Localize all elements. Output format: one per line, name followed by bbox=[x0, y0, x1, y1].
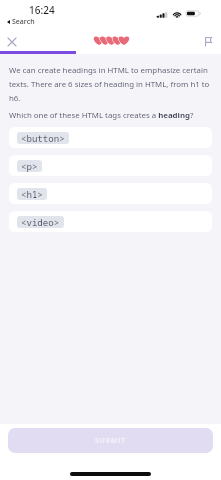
staticText: <h1> bbox=[21, 188, 43, 200]
staticText: SUBMIT bbox=[95, 436, 126, 446]
staticText: We can create headings in HTML to emphas… bbox=[9, 65, 212, 103]
button[interactable]: SUBMIT bbox=[8, 428, 213, 453]
staticText: <button> bbox=[21, 132, 65, 144]
staticText: Which one of these HTML tags creates a h… bbox=[9, 110, 194, 121]
button[interactable]: <p> bbox=[9, 155, 212, 176]
button[interactable]: <video> bbox=[9, 211, 212, 232]
staticText: <video> bbox=[21, 216, 60, 228]
staticText: <p> bbox=[21, 160, 38, 172]
staticText: Search bbox=[12, 17, 35, 27]
button[interactable]: Close bbox=[2, 32, 22, 52]
button[interactable]: <button> bbox=[9, 127, 212, 148]
staticText: 16:24 bbox=[29, 3, 55, 17]
button[interactable]: <h1> bbox=[9, 183, 212, 204]
button[interactable]: Report bbox=[198, 31, 218, 51]
